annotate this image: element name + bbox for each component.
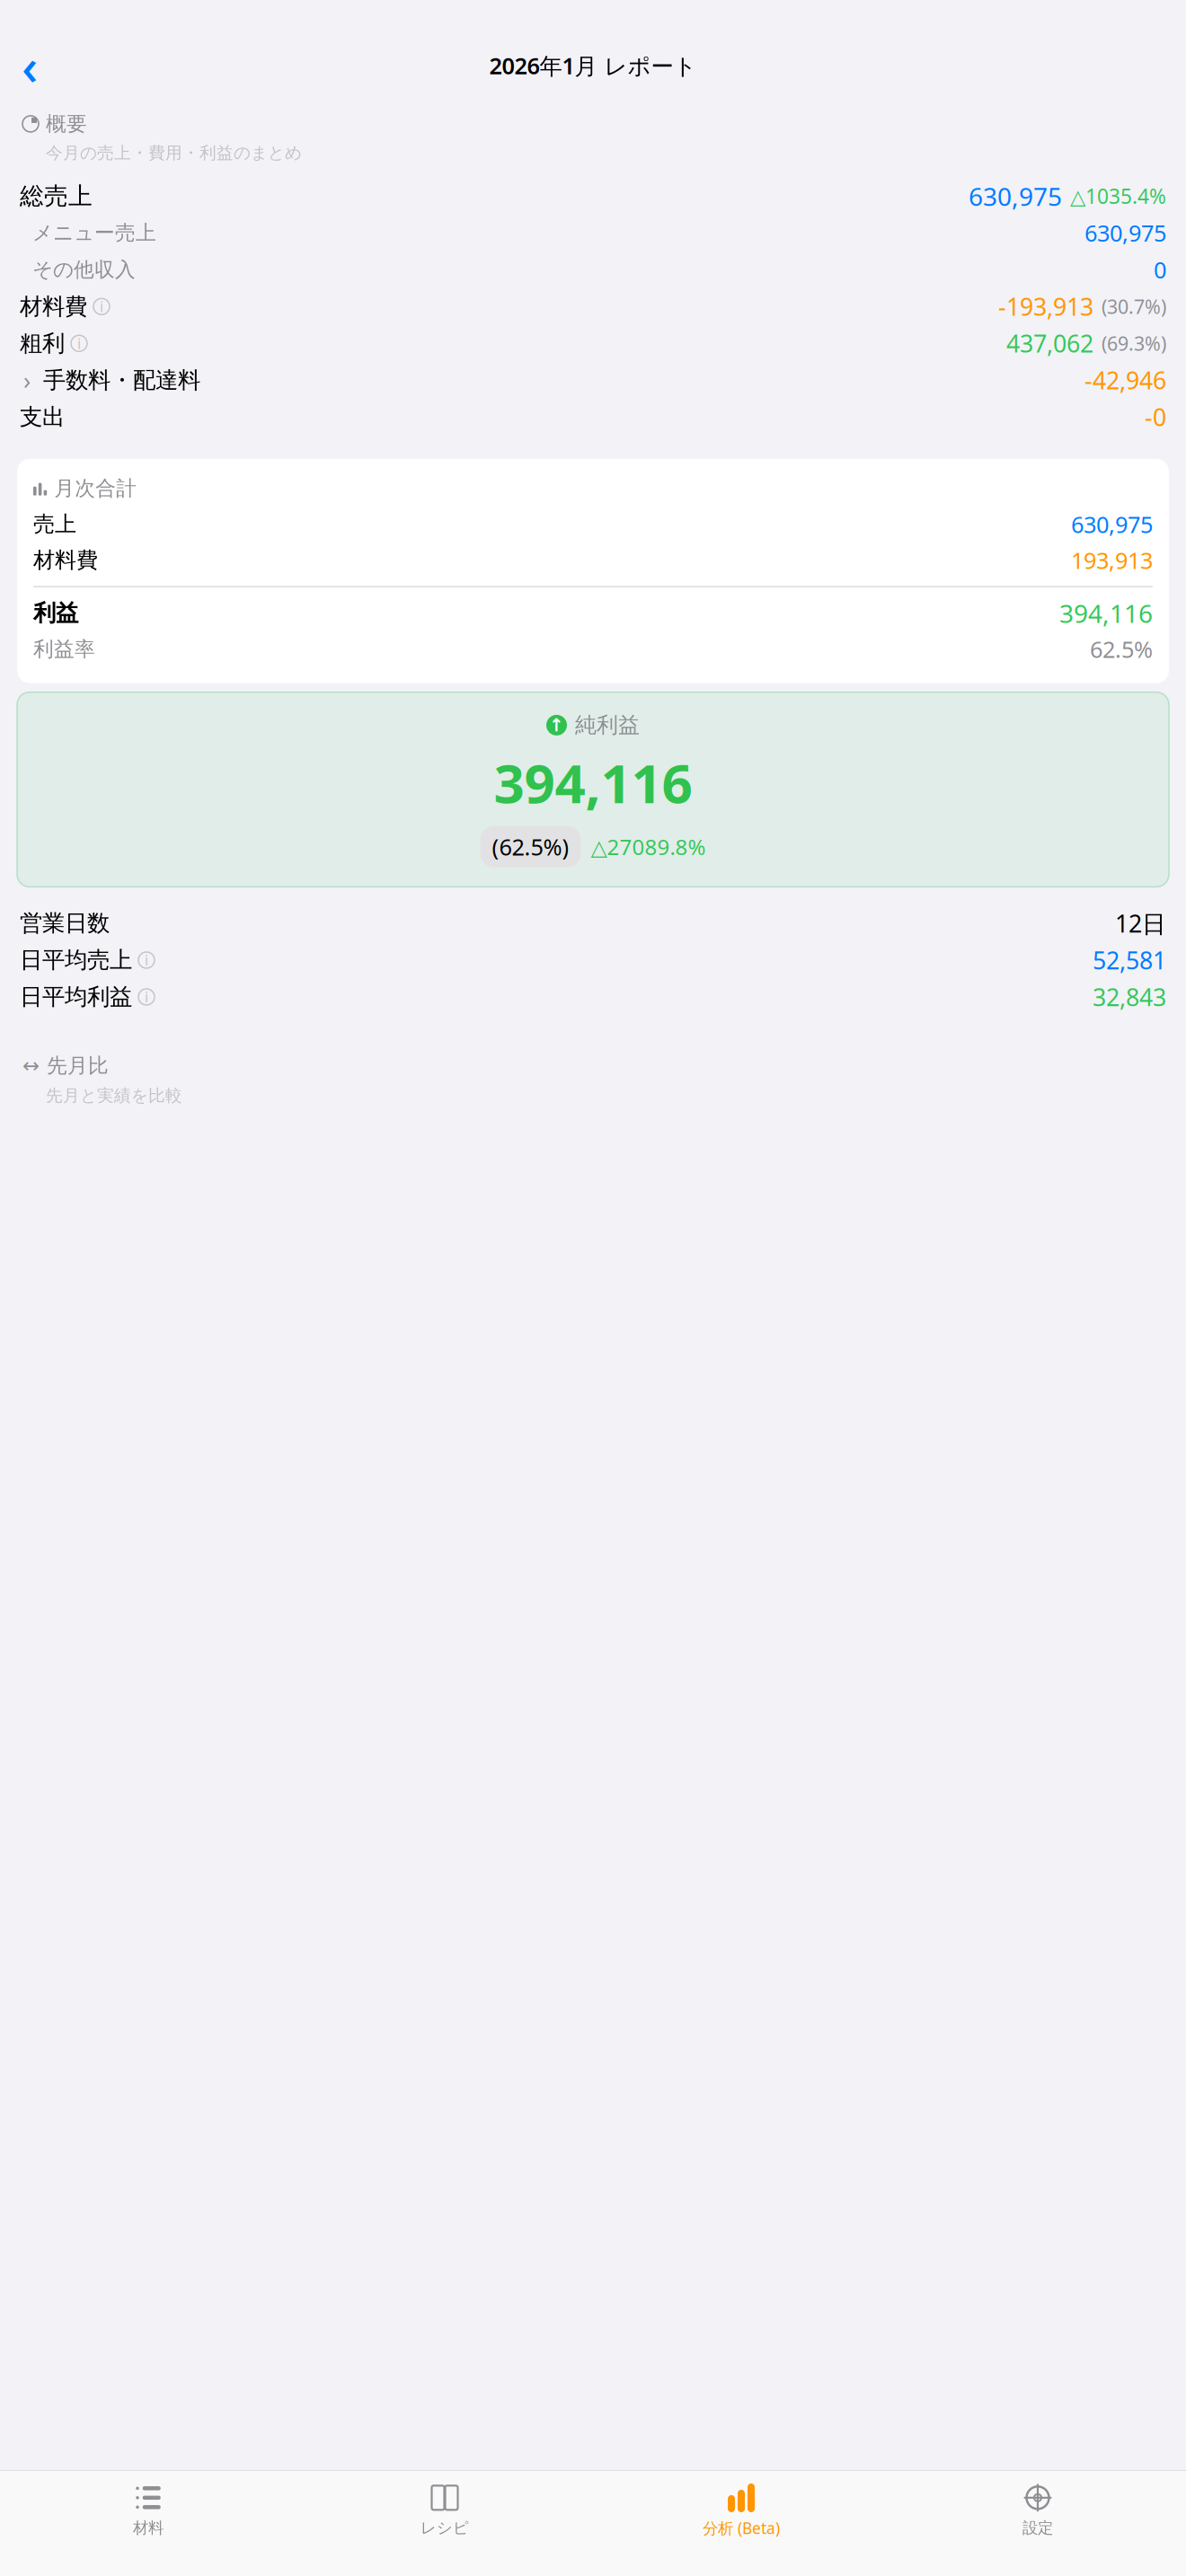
staticText: ‹ [22, 32, 38, 99]
staticText: i [145, 987, 148, 1006]
staticText: (30.7%) [1102, 294, 1166, 319]
staticText: 32,843 [1093, 981, 1166, 1013]
staticText: その他収入 [32, 257, 136, 282]
staticText: 先月と実績を比較 [46, 1085, 182, 1106]
staticText: 売上 [33, 511, 76, 537]
staticText: -193,913 [998, 291, 1093, 322]
button[interactable]: 設定 [889, 2475, 1186, 2543]
staticText: 先月比 [47, 1053, 109, 1078]
staticText: 437,062 [1006, 327, 1093, 359]
staticText: 630,975 [969, 179, 1062, 213]
button[interactable]: レシピ [296, 2475, 593, 2543]
staticText: -42,946 [1084, 364, 1166, 396]
staticText: 支出 [20, 403, 65, 431]
staticText: 営業日数 [20, 909, 110, 937]
button[interactable]: › [20, 362, 1166, 399]
staticText: 材料 [133, 2518, 164, 2537]
staticText: ↑ [549, 715, 564, 735]
staticText: △1035.4% [1070, 183, 1166, 210]
staticText: i [77, 334, 81, 353]
staticText: › [23, 364, 31, 396]
staticText: 62.5% [1090, 634, 1153, 664]
staticText: -0 [1145, 401, 1166, 433]
button[interactable]: 分析 (Beta) [593, 2475, 889, 2544]
staticText: 193,913 [1071, 545, 1153, 575]
staticText: 分析 (Beta) [703, 2518, 780, 2538]
staticText: ↔ [22, 1054, 40, 1077]
button[interactable]: 戻る [9, 45, 50, 86]
staticText: 394,116 [494, 746, 692, 818]
staticText: 純利益 [575, 712, 640, 738]
staticText: メニュー売上 [32, 220, 156, 245]
staticText: 設定 [1022, 2518, 1053, 2537]
staticText: 利益率 [33, 637, 95, 662]
staticText: 材料費 [20, 293, 87, 320]
button[interactable]: 材料 [0, 2475, 296, 2543]
staticText: 630,975 [1084, 218, 1166, 248]
staticText: 日平均利益 [20, 983, 132, 1011]
staticText: 52,581 [1093, 944, 1166, 976]
staticText: (62.5%) [492, 832, 569, 862]
staticText: △27089.8% [591, 832, 706, 861]
staticText: 12日 [1115, 907, 1166, 939]
staticText: 2026年1月 レポート [489, 50, 697, 81]
staticText: i [145, 951, 148, 970]
staticText: 概要 [46, 111, 87, 136]
staticText: i [100, 297, 103, 316]
staticText: レシピ [420, 2518, 469, 2537]
staticText: (69.3%) [1102, 331, 1166, 356]
staticText: 日平均売上 [20, 946, 132, 974]
staticText: 利益 [33, 599, 78, 627]
staticText: 手数料・配達料 [43, 366, 200, 394]
staticText: 総売上 [20, 181, 93, 211]
staticText: 月次合計 [54, 476, 137, 501]
staticText: 630,975 [1071, 509, 1153, 539]
staticText: 今月の売上・費用・利益のまとめ [46, 143, 302, 163]
staticText: 394,116 [1059, 596, 1153, 630]
staticText: 0 [1154, 255, 1166, 285]
staticText: 材料費 [33, 547, 98, 573]
staticText: 粗利 [20, 329, 65, 357]
